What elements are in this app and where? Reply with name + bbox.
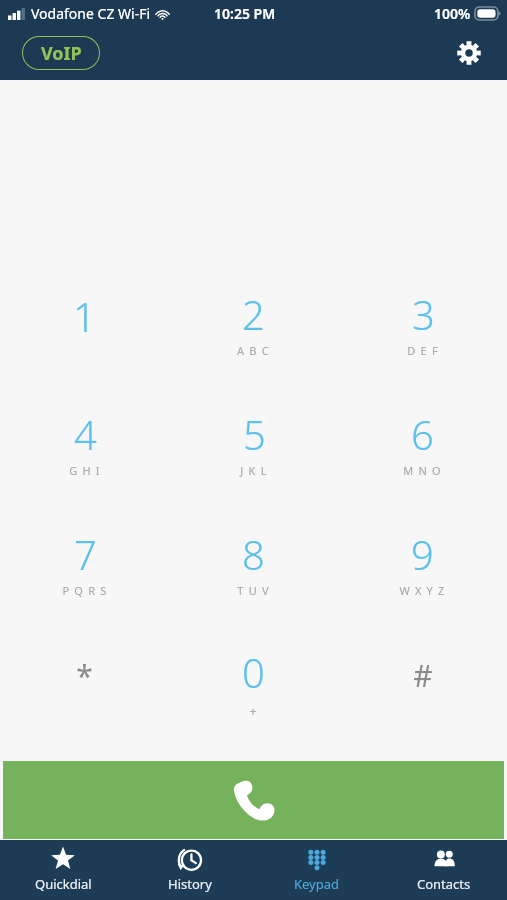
- button[interactable]: 1: [0, 262, 169, 382]
- button[interactable]: 4: [0, 382, 169, 502]
- button[interactable]: 2: [169, 262, 338, 382]
- staticText: 6: [411, 407, 434, 461]
- staticText: #: [413, 655, 433, 696]
- button[interactable]: 5: [169, 382, 338, 502]
- button[interactable]: History: [126, 840, 253, 900]
- staticText: 5: [243, 407, 266, 461]
- staticText: 10:25 PM: [214, 4, 276, 23]
- staticText: Contacts: [417, 875, 471, 893]
- staticText: M N O: [403, 463, 442, 478]
- button[interactable]: Quickdial: [0, 840, 126, 900]
- staticText: P Q R S: [62, 583, 108, 598]
- staticText: A B C: [237, 343, 270, 358]
- button[interactable]: 6: [338, 382, 507, 502]
- staticText: 1: [73, 289, 96, 343]
- button[interactable]: Contacts: [380, 840, 507, 900]
- button[interactable]: 9: [338, 502, 507, 622]
- staticText: +: [249, 703, 258, 719]
- staticText: Quickdial: [35, 875, 92, 893]
- staticText: 8: [242, 527, 265, 581]
- button[interactable]: Settings: [449, 33, 489, 73]
- staticText: VoIP: [41, 41, 82, 66]
- button[interactable]: VoIP: [22, 36, 100, 70]
- staticText: W X Y Z: [399, 583, 446, 598]
- button[interactable]: 7: [0, 502, 169, 622]
- staticText: Vodafone CZ Wi-Fi: [31, 4, 151, 23]
- staticText: J K L: [240, 463, 268, 478]
- button[interactable]: *: [0, 622, 169, 742]
- button[interactable]: 0: [169, 622, 338, 742]
- button[interactable]: Call: [3, 761, 504, 839]
- staticText: 0: [242, 645, 265, 699]
- staticText: G H I: [69, 463, 101, 478]
- button[interactable]: 8: [169, 502, 338, 622]
- button[interactable]: Keypad: [253, 840, 380, 900]
- staticText: 4: [74, 407, 97, 461]
- staticText: 7: [74, 527, 97, 581]
- staticText: 9: [411, 527, 434, 581]
- button[interactable]: 3: [338, 262, 507, 382]
- staticText: 2: [242, 287, 265, 341]
- staticText: 100%: [434, 4, 471, 23]
- staticText: 3: [412, 287, 435, 341]
- staticText: D E F: [407, 343, 439, 358]
- staticText: Keypad: [294, 875, 340, 893]
- staticText: T U V: [237, 583, 270, 598]
- button[interactable]: #: [338, 622, 507, 742]
- staticText: *: [76, 655, 93, 696]
- staticText: History: [168, 875, 212, 893]
